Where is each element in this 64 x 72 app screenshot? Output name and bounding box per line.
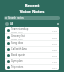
staticText: Book quote [11,53,26,57]
staticText: Search notes [8,16,24,20]
staticText: Grocery list [11,34,25,38]
staticText: 4:31 [52,66,57,69]
staticText: Today 9:12 [11,31,23,33]
staticText: Gym plan [11,59,23,63]
staticText: 1:07 [52,60,57,63]
button[interactable]: Search notes [4,16,60,20]
button[interactable]: Team standup [5,27,59,33]
staticText: 3:55 [52,48,57,51]
staticText: 0:18 [52,54,57,57]
staticText: All [10,22,14,26]
staticText: Today 8:03 [11,38,23,40]
button[interactable]: Grocery list [5,34,59,40]
staticText: 0:42 [52,36,57,39]
staticText: Trip notes [11,65,24,69]
staticText: Team standup [11,27,29,31]
staticText: 1:24 [52,29,57,32]
button[interactable]: Call with Ana [5,47,59,52]
button[interactable]: All notes [5,22,9,26]
button[interactable]: Gym plan [5,59,59,64]
staticText: Call with Ana [11,47,27,51]
staticText: Recent [0,3,64,9]
button[interactable]: Trip notes [5,65,59,70]
button[interactable]: Song idea [5,41,59,46]
staticText: Song idea [11,41,24,45]
staticText: 2:10 [52,42,57,45]
staticText: Voice Notes [0,9,64,15]
button[interactable]: Book quote [5,53,59,58]
